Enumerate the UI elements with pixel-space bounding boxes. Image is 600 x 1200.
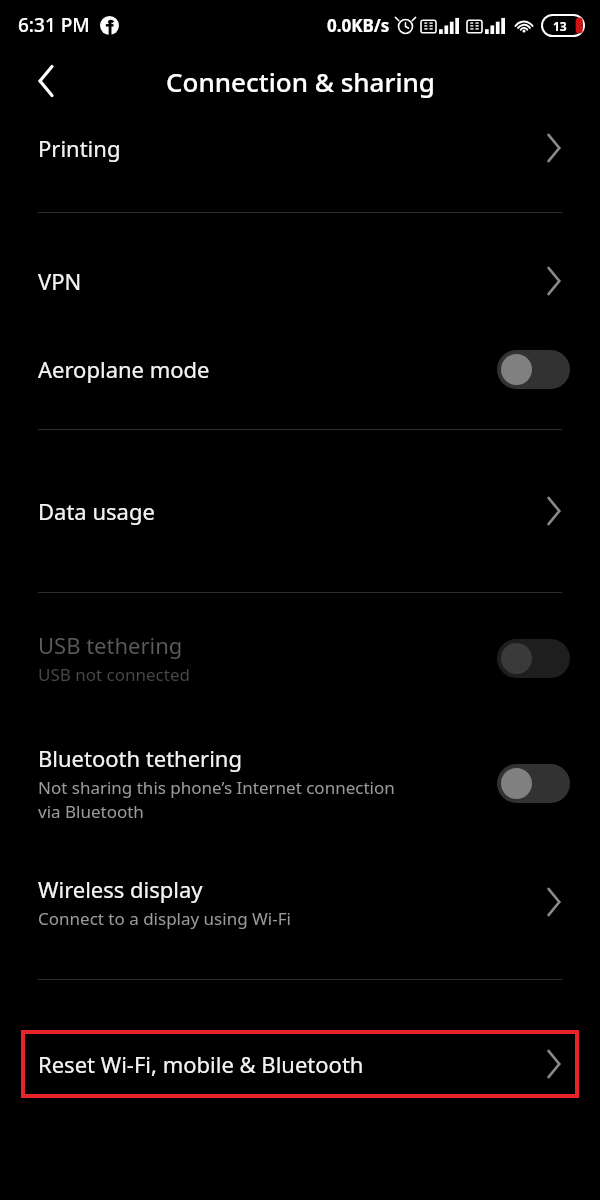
staticText: VPN [38,266,82,296]
staticText: USB not connected [38,663,190,686]
button[interactable]: VPN [0,251,600,311]
button[interactable]: Aeroplane mode [0,339,600,399]
button[interactable]: USB tethering [0,615,600,701]
button[interactable]: Data usage [0,480,600,542]
button[interactable]: Printing [0,112,600,184]
button[interactable]: Back [22,56,72,106]
button[interactable] [497,350,570,389]
button[interactable]: Bluetooth tethering [0,729,600,837]
staticText: 0.0KB/s [327,14,390,37]
button[interactable] [497,639,570,678]
staticText: USB tethering [38,630,183,660]
staticText: Connect to a display using Wi-Fi [38,907,291,930]
staticText: Bluetooth tethering [38,743,242,773]
staticText: 13 [553,18,567,34]
staticText: Printing [38,133,121,163]
staticText: Not sharing this phone’s Internet connec… [38,776,395,823]
staticText: Reset Wi-Fi, mobile & Bluetooth [38,1049,536,1079]
button[interactable]: Reset Wi-Fi, mobile & Bluetooth [21,1030,579,1098]
staticText: Connection & sharing [166,64,435,99]
button[interactable] [497,764,570,803]
staticText: 6:31 PM [18,12,90,38]
button[interactable]: Wireless display [0,859,600,945]
staticText: Aeroplane mode [38,354,210,384]
staticText: Wireless display [38,874,203,904]
staticText: Data usage [38,496,155,526]
